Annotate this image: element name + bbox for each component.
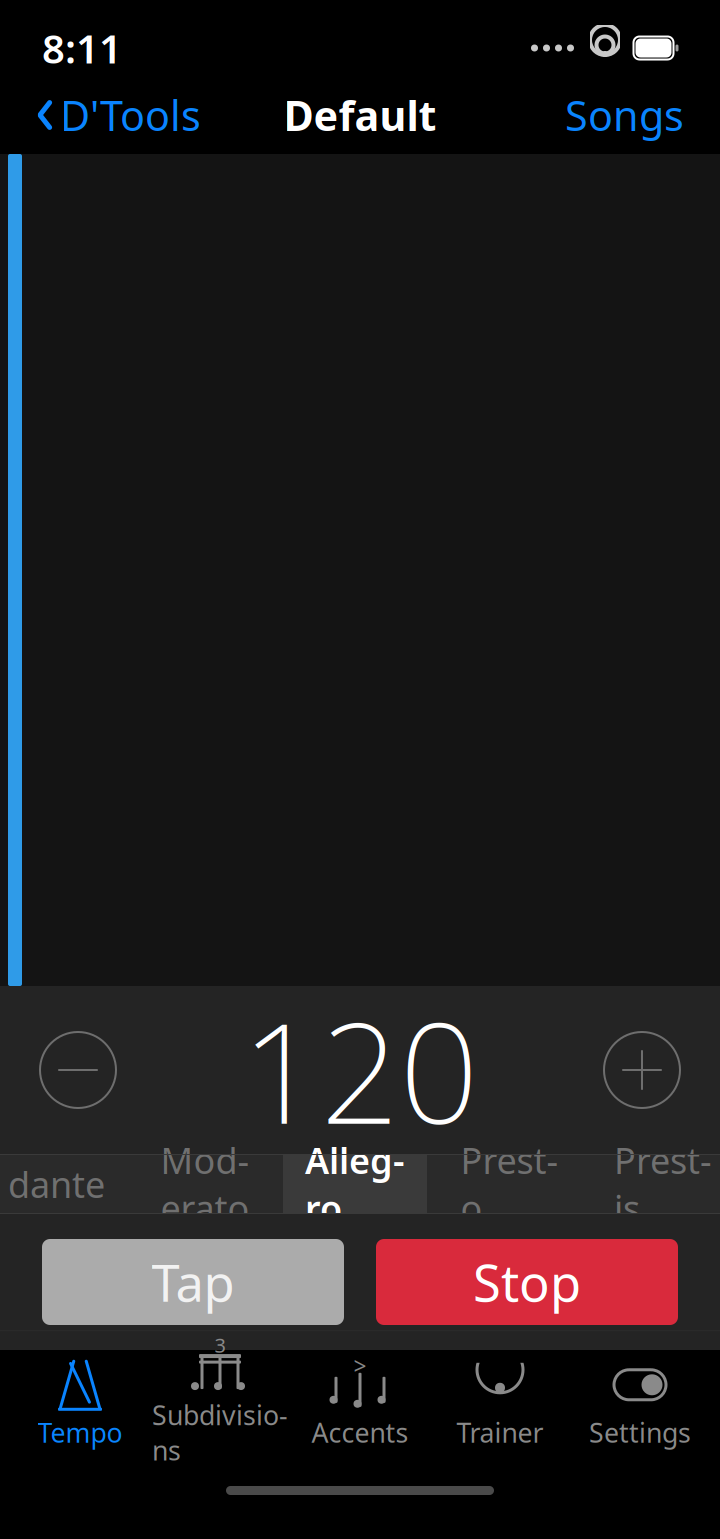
button[interactable]: Prestis — [592, 1155, 720, 1213]
button[interactable]: Tempo — [10, 1349, 150, 1456]
staticText: Allegro — [305, 1136, 405, 1232]
button[interactable]: Tap — [42, 1239, 344, 1325]
button[interactable]: 3 — [150, 1331, 290, 1474]
staticText: Trainer — [456, 1415, 543, 1450]
button[interactable]: > — [290, 1349, 430, 1456]
button[interactable]: Moderato — [138, 1155, 271, 1213]
staticText: Stop — [473, 1248, 581, 1316]
staticText: Presto — [460, 1136, 558, 1232]
staticText: Settings — [589, 1415, 691, 1450]
staticText: 120 — [241, 978, 478, 1162]
button[interactable]: Trainer — [430, 1349, 570, 1456]
button[interactable]: Allegro — [283, 1155, 427, 1213]
button[interactable]: dante — [0, 1155, 127, 1213]
staticText: Tap — [151, 1248, 234, 1316]
button[interactable]: Stop — [376, 1239, 678, 1325]
staticText: Moderato — [160, 1136, 249, 1232]
staticText: dante — [8, 1160, 105, 1208]
staticText: Prestis — [614, 1136, 712, 1232]
staticText: 3 — [214, 1332, 225, 1358]
staticText: D'Tools — [60, 88, 201, 142]
button[interactable]: Decrease tempo — [22, 1018, 134, 1122]
staticText: Tempo — [37, 1415, 122, 1450]
button[interactable]: Increase tempo — [586, 1018, 698, 1122]
button[interactable]: Songs — [551, 80, 698, 150]
staticText: Songs — [565, 88, 684, 142]
staticText: > — [353, 1351, 366, 1381]
button[interactable]: D'Tools — [22, 80, 215, 150]
staticText: Subdivisions — [152, 1397, 288, 1468]
staticText: Default — [283, 88, 436, 142]
button[interactable]: Settings — [570, 1349, 710, 1456]
staticText: 8:11 — [42, 21, 122, 74]
button[interactable]: Presto — [438, 1155, 580, 1213]
staticText: Accents — [311, 1415, 408, 1450]
